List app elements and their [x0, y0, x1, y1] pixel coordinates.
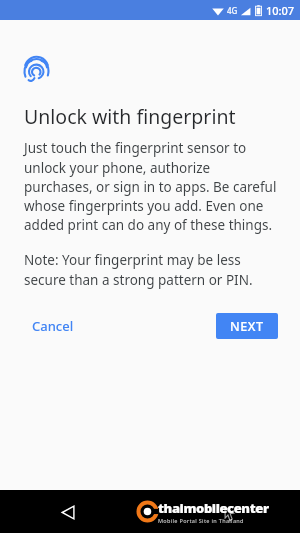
button[interactable]: Cancel [26, 312, 80, 340]
staticText: Unlock with fingerprint [24, 103, 236, 130]
staticText: 10:07 [266, 3, 295, 18]
staticText: NEXT [230, 318, 264, 335]
staticText: Cancel [32, 317, 74, 335]
button[interactable]: Back [52, 496, 84, 528]
staticText: Just touch the fingerprint sensor to unl… [24, 139, 278, 234]
staticText: Mobile Portal Site in Thailand [158, 517, 244, 524]
staticText: Note: Your fingerprint may be less secur… [24, 251, 278, 289]
button[interactable]: NEXT [216, 313, 278, 339]
staticText: thaimobilecenter [158, 499, 269, 517]
staticText: 4G [227, 5, 238, 16]
